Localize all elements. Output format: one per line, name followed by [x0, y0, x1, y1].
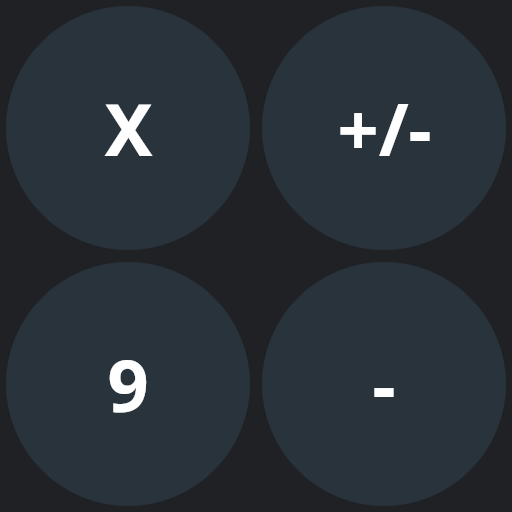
button[interactable]: 9: [6, 262, 250, 506]
staticText: 9: [107, 335, 149, 433]
staticText: -: [372, 335, 396, 433]
button[interactable]: +/-: [262, 6, 506, 250]
staticText: X: [104, 79, 153, 177]
button[interactable]: X: [6, 6, 250, 250]
staticText: +/-: [337, 79, 432, 177]
button[interactable]: -: [262, 262, 506, 506]
